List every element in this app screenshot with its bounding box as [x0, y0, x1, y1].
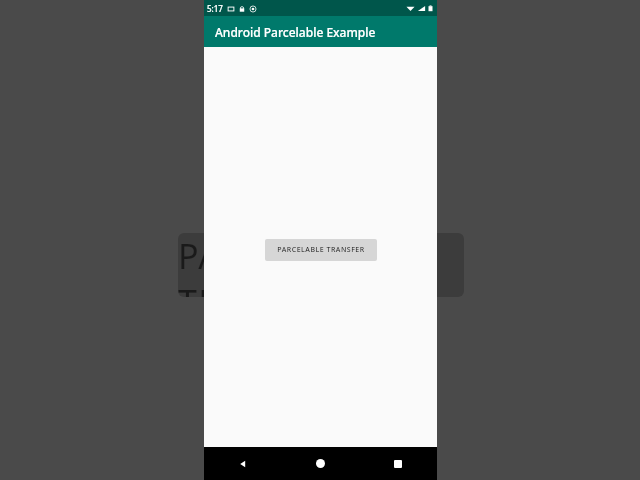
- staticText: PARCELABLE TRANSFER: [277, 245, 365, 255]
- staticText: 5:17: [207, 3, 223, 14]
- button[interactable]: Back: [204, 447, 281, 480]
- button[interactable]: PARCELABLE TRANSFER: [265, 239, 377, 261]
- button[interactable]: Home: [281, 447, 359, 480]
- staticText: PARCELABLE TRANSFER: [178, 233, 464, 297]
- staticText: Android Parcelable Example: [215, 24, 376, 40]
- button[interactable]: Recent apps: [359, 447, 437, 480]
